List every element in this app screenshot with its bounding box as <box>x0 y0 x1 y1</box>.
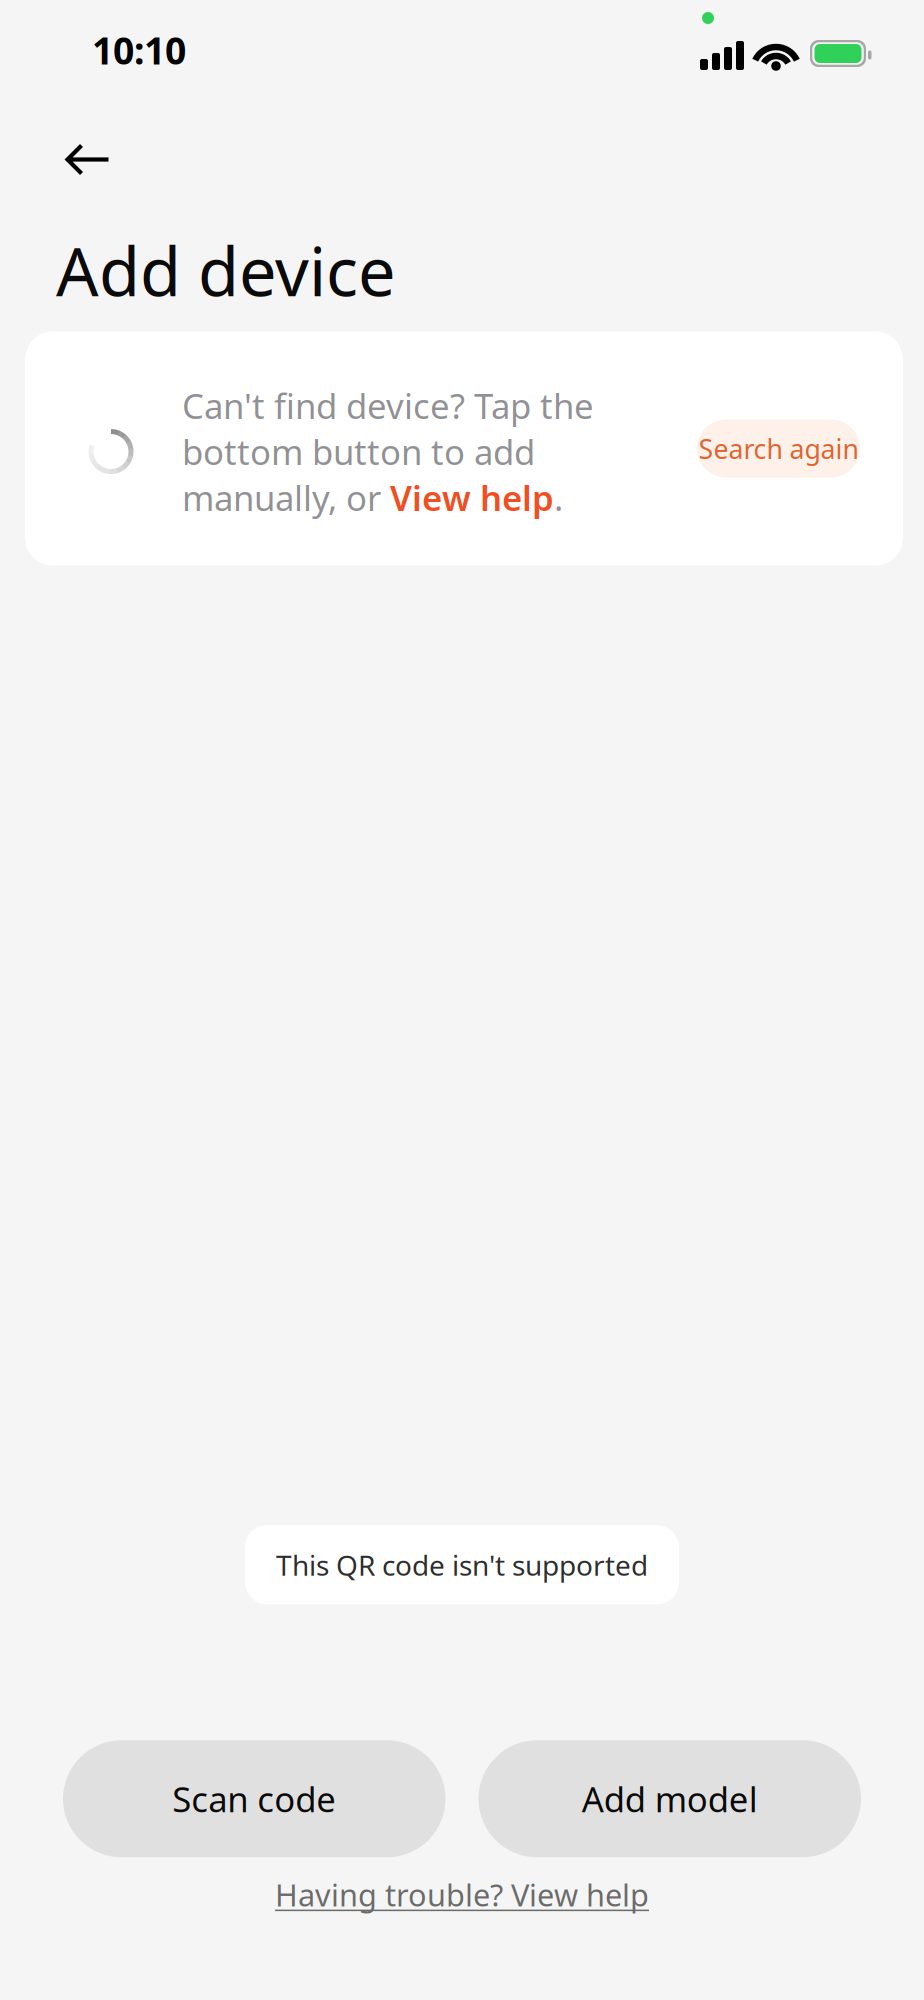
button[interactable]: Search again <box>697 419 860 477</box>
button[interactable]: Scan code <box>63 1740 445 1857</box>
staticText: 10:10 <box>92 25 186 75</box>
staticText: This QR code isn't supported <box>276 1546 648 1583</box>
button[interactable]: Back <box>51 130 125 189</box>
staticText: View help <box>390 475 554 521</box>
button[interactable]: Add model <box>478 1740 861 1857</box>
staticText: . <box>554 475 563 521</box>
button[interactable]: Having trouble? View help <box>275 1864 649 1925</box>
staticText: Can't find device? Tap the <box>182 382 594 428</box>
staticText: Add device <box>56 226 396 314</box>
staticText: bottom button to add <box>182 429 535 475</box>
staticText: Add model <box>582 1776 758 1822</box>
staticText: Scan code <box>172 1776 336 1822</box>
staticText: manually, or <box>182 475 390 521</box>
staticText: Search again <box>698 431 858 466</box>
staticText: Having trouble? View help <box>275 1874 649 1915</box>
button[interactable]: View help <box>390 475 554 521</box>
